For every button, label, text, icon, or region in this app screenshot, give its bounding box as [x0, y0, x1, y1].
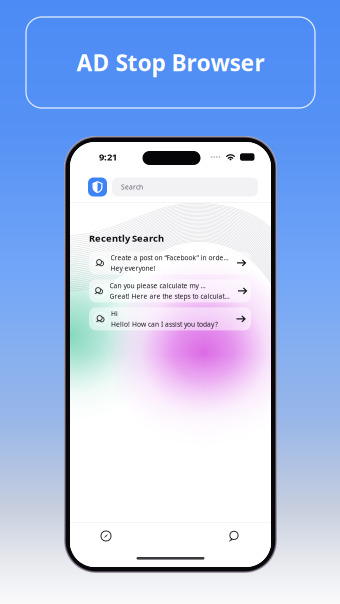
staticText: Create a post on “Facebook” in orde… [110, 253, 228, 262]
button[interactable]: Search [112, 177, 258, 196]
staticText: Great! Here are the steps to calculat… [109, 292, 229, 300]
staticText: AD Stop Browser [76, 47, 264, 77]
staticText: Can you please calculate my … [109, 281, 205, 290]
staticText: Recently Search [89, 232, 164, 244]
button[interactable]: Ad blocker [88, 177, 107, 196]
button[interactable]: Create a post on “Facebook” in orde… [89, 251, 251, 274]
button[interactable]: Browser [70, 522, 142, 550]
staticText: Hey everyone! [110, 264, 155, 272]
button[interactable]: Hi [89, 307, 251, 330]
button[interactable]: Chats [198, 522, 270, 550]
staticText: Hello! How can I assist you today? [111, 320, 218, 328]
staticText: 9:21 [99, 151, 117, 163]
staticText: Search [121, 183, 143, 191]
staticText: Hi [111, 309, 118, 318]
button[interactable]: Can you please calculate my … [89, 279, 251, 302]
